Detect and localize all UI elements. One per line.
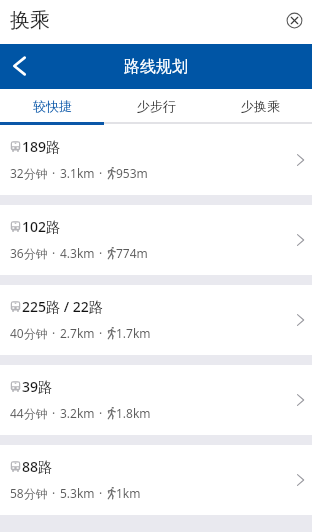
button[interactable]: 102路: [0, 205, 312, 275]
button[interactable]: 88路: [0, 445, 312, 515]
staticText: 换乘: [10, 8, 50, 33]
staticText: 较快捷: [33, 98, 72, 114]
button[interactable]: 189路: [0, 125, 312, 195]
staticText: ·: [99, 485, 103, 501]
staticText: 40分钟: [10, 325, 48, 341]
staticText: 58分钟: [10, 485, 48, 501]
staticText: 88路: [22, 457, 53, 476]
staticText: ·: [52, 325, 56, 341]
staticText: 2.7km: [60, 325, 95, 341]
staticText: 32分钟: [10, 165, 48, 181]
staticText: 774m: [116, 245, 148, 261]
staticText: 少步行: [137, 98, 176, 114]
staticText: 少换乘: [241, 98, 280, 114]
staticText: 189路: [22, 137, 61, 156]
button[interactable]: 39路: [0, 365, 312, 435]
staticText: 44分钟: [10, 405, 48, 421]
staticText: 953m: [116, 165, 148, 181]
staticText: ·: [99, 165, 103, 181]
staticText: 5.3km: [60, 485, 95, 501]
staticText: ·: [52, 405, 56, 421]
button[interactable]: 少步行: [104, 89, 208, 122]
staticText: ·: [52, 485, 56, 501]
staticText: 225路 / 22路: [22, 297, 103, 316]
staticText: ·: [99, 325, 103, 341]
staticText: 4.3km: [60, 245, 95, 261]
button[interactable]: 少换乘: [208, 89, 312, 122]
staticText: 102路: [22, 217, 61, 236]
staticText: ·: [52, 165, 56, 181]
button[interactable]: 225路 / 22路: [0, 285, 312, 355]
staticText: 1.8km: [116, 405, 151, 421]
staticText: 36分钟: [10, 245, 48, 261]
button[interactable]: Close: [285, 11, 304, 30]
button[interactable]: 较快捷: [0, 89, 104, 122]
staticText: 路线规划: [124, 57, 188, 77]
staticText: 1km: [116, 485, 141, 501]
button[interactable]: Back: [7, 54, 31, 78]
staticText: 3.1km: [60, 165, 95, 181]
staticText: 3.2km: [60, 405, 95, 421]
staticText: 39路: [22, 377, 53, 396]
staticText: 1.7km: [116, 325, 151, 341]
staticText: ·: [52, 245, 56, 261]
staticText: ·: [99, 245, 103, 261]
staticText: ·: [99, 405, 103, 421]
